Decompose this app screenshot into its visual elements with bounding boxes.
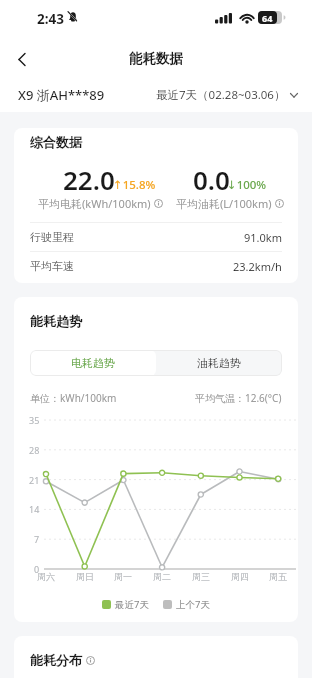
staticText: 能耗分布	[30, 652, 82, 668]
staticText: 平均油耗(L/100km)	[176, 196, 272, 211]
staticText: ↑15.8%	[113, 177, 156, 193]
button[interactable]: 油耗趋势	[156, 350, 282, 376]
staticText: 7	[34, 533, 40, 545]
staticText: 综合数据	[30, 134, 82, 150]
staticText: 35	[29, 414, 40, 426]
staticText: 周五	[269, 571, 287, 582]
staticText: 电耗趋势	[71, 356, 115, 370]
staticText: 周六	[37, 571, 55, 582]
staticText: 平均气温：12.6(°C)	[195, 391, 282, 405]
staticText: 28	[29, 444, 40, 456]
staticText: 能耗趋势	[30, 313, 82, 329]
staticText: 0	[34, 563, 40, 575]
staticText: 平均电耗(kWh/100km)	[38, 196, 151, 211]
staticText: 上个7天	[176, 598, 210, 611]
button[interactable]	[2, 39, 42, 79]
staticText: 周日	[76, 571, 94, 582]
staticText: 油耗趋势	[197, 356, 241, 370]
staticText: 23.2km/h	[233, 259, 282, 274]
staticText: 0.0	[193, 162, 230, 197]
staticText: 单位：kWh/100km	[30, 391, 117, 405]
staticText: 能耗数据	[129, 50, 183, 67]
staticText: 91.0km	[244, 230, 282, 245]
staticText: 21	[29, 474, 40, 486]
staticText: 平均车速	[30, 259, 74, 273]
staticText: 周四	[231, 571, 249, 582]
staticText: 2:43	[37, 10, 64, 28]
staticText: 周一	[114, 571, 132, 582]
staticText: 14	[29, 503, 40, 515]
staticText: 周三	[192, 571, 210, 582]
button[interactable]: 电耗趋势	[30, 350, 156, 376]
staticText: X9 浙AH***89	[18, 86, 105, 104]
staticText: 周二	[153, 571, 171, 582]
button[interactable]: 最近7天（02.28~03.06）	[156, 87, 298, 103]
staticText: 22.0	[63, 162, 115, 197]
staticText: ↓100%	[227, 177, 267, 193]
staticText: 行驶里程	[30, 230, 74, 244]
staticText: 最近7天	[115, 598, 149, 611]
staticText: 64	[262, 12, 273, 24]
staticText: 最近7天（02.28~03.06）	[156, 87, 286, 103]
